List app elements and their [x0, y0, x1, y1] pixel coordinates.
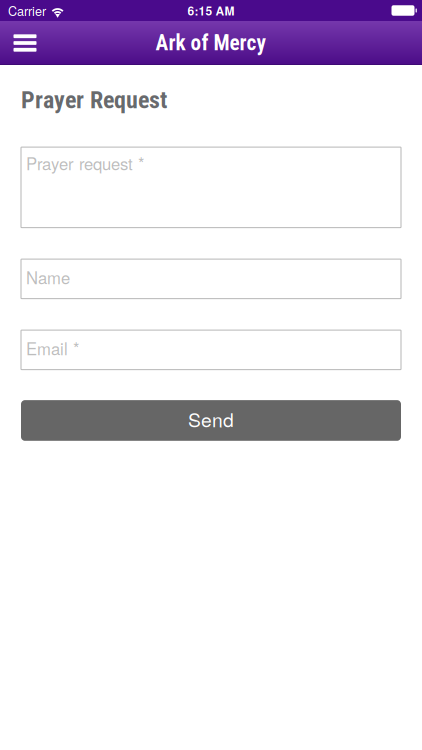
staticText: Prayer request *	[26, 151, 144, 175]
staticText: Email *	[26, 336, 79, 360]
button[interactable]: Email *	[21, 330, 401, 370]
staticText: Name	[26, 265, 70, 289]
button[interactable]: Name	[21, 259, 401, 299]
staticText: 6:15 AM	[187, 2, 234, 19]
button[interactable]: Send	[21, 400, 401, 441]
staticText: Send	[188, 405, 234, 433]
button[interactable]: Prayer request *	[21, 147, 401, 228]
button[interactable]: Menu	[3, 21, 47, 65]
staticText: Carrier	[8, 1, 46, 19]
staticText: Prayer Request	[21, 86, 167, 114]
staticText: Ark of Mercy	[155, 30, 266, 55]
